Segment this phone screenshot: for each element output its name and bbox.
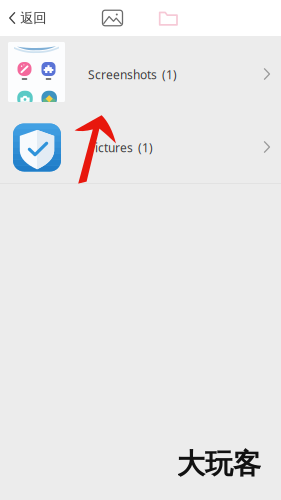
staticText: (1) [162, 66, 177, 82]
button[interactable]: 返回 [0, 0, 58, 36]
staticText: Screenshots [88, 66, 157, 82]
staticText: 大玩客 [177, 447, 261, 481]
staticText: 返回 [20, 10, 46, 26]
button[interactable]: Photos [94, 0, 130, 36]
staticText: (1) [138, 139, 153, 155]
button[interactable]: Screenshots [0, 36, 281, 112]
staticText: Pictures [88, 139, 133, 155]
button[interactable]: Pictures [0, 112, 281, 183]
button[interactable]: Folders [150, 0, 186, 36]
